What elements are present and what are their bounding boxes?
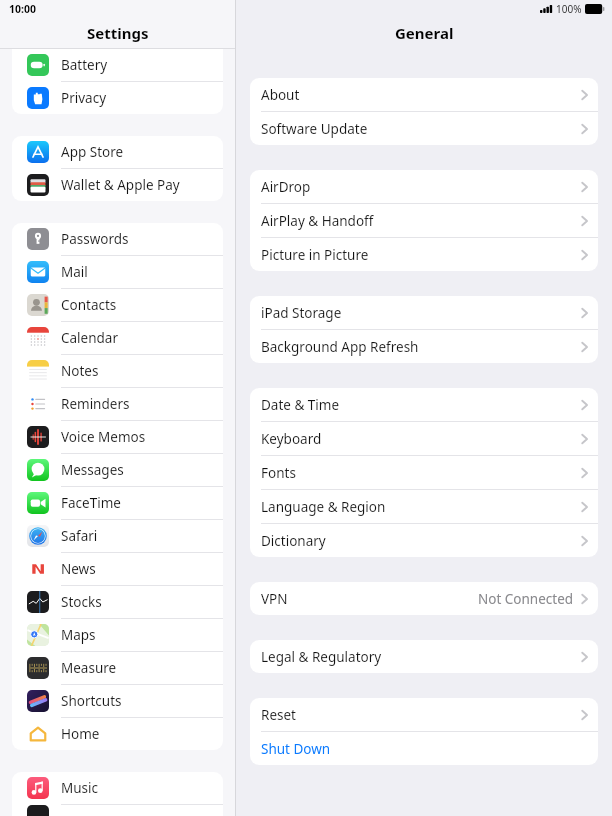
staticText: Date & Time: [261, 396, 340, 414]
button[interactable]: Dictionary: [250, 524, 598, 557]
button[interactable]: About: [250, 78, 598, 111]
button[interactable]: Voice Memos: [12, 421, 223, 453]
button[interactable]: Background App Refresh: [250, 330, 598, 363]
button[interactable]: Stocks: [12, 586, 223, 618]
staticText: Maps: [61, 626, 96, 644]
button[interactable]: Music: [12, 772, 223, 804]
button[interactable]: Messages: [12, 454, 223, 486]
staticText: Contacts: [61, 296, 117, 314]
button[interactable]: Keyboard: [250, 422, 598, 455]
staticText: iPad Storage: [261, 304, 342, 322]
button[interactable]: AirDrop: [250, 170, 598, 203]
button[interactable]: VPN: [250, 582, 598, 615]
staticText: Voice Memos: [61, 428, 146, 446]
staticText: Shortcuts: [61, 692, 122, 710]
staticText: About: [261, 86, 300, 104]
staticText: Notes: [61, 362, 99, 380]
button[interactable]: Calendar: [12, 322, 223, 354]
button[interactable]: News: [12, 553, 223, 585]
staticText: Home: [61, 725, 100, 743]
button[interactable]: Language & Region: [250, 490, 598, 523]
button[interactable]: App Store: [12, 136, 223, 168]
staticText: 10:00: [9, 2, 36, 16]
button[interactable]: [12, 805, 223, 816]
button[interactable]: iPad Storage: [250, 296, 598, 329]
staticText: General: [395, 23, 454, 43]
staticText: 100%: [556, 2, 582, 16]
staticText: Battery: [61, 56, 108, 74]
button[interactable]: Date & Time: [250, 388, 598, 421]
button[interactable]: FaceTime: [12, 487, 223, 519]
staticText: Stocks: [61, 593, 102, 611]
staticText: AirDrop: [261, 178, 311, 196]
staticText: Background App Refresh: [261, 338, 419, 356]
button[interactable]: Legal & Regulatory: [250, 640, 598, 673]
staticText: News: [61, 560, 96, 578]
staticText: App Store: [61, 143, 124, 161]
staticText: Reminders: [61, 395, 130, 413]
staticText: Reset: [261, 706, 296, 724]
staticText: Privacy: [61, 89, 107, 107]
other: Cellular signal: [540, 5, 553, 13]
staticText: Safari: [61, 527, 98, 545]
button[interactable]: Shortcuts: [12, 685, 223, 717]
button[interactable]: Picture in Picture: [250, 238, 598, 271]
button[interactable]: Privacy: [12, 82, 223, 114]
button[interactable]: AirPlay & Handoff: [250, 204, 598, 237]
staticText: Dictionary: [261, 532, 326, 550]
staticText: Not Connected: [478, 590, 574, 608]
button[interactable]: Mail: [12, 256, 223, 288]
staticText: Measure: [61, 659, 117, 677]
button[interactable]: Battery: [12, 49, 223, 81]
button[interactable]: Reminders: [12, 388, 223, 420]
other: Battery full: [585, 4, 605, 14]
staticText: Shut Down: [261, 740, 331, 758]
staticText: Picture in Picture: [261, 246, 369, 264]
staticText: FaceTime: [61, 494, 121, 512]
staticText: Mail: [61, 263, 88, 281]
staticText: Music: [61, 779, 99, 797]
staticText: Language & Region: [261, 498, 386, 516]
button[interactable]: Measure: [12, 652, 223, 684]
button[interactable]: Wallet & Apple Pay: [12, 169, 223, 201]
staticText: Settings: [87, 23, 149, 43]
staticText: Fonts: [261, 464, 296, 482]
staticText: Messages: [61, 461, 124, 479]
button[interactable]: Fonts: [250, 456, 598, 489]
staticText: Wallet & Apple Pay: [61, 176, 180, 194]
staticText: Legal & Regulatory: [261, 648, 382, 666]
button[interactable]: Reset: [250, 698, 598, 731]
staticText: Keyboard: [261, 430, 322, 448]
button[interactable]: Home: [12, 718, 223, 750]
button[interactable]: Notes: [12, 355, 223, 387]
button[interactable]: Passwords: [12, 223, 223, 255]
staticText: Software Update: [261, 120, 368, 138]
button[interactable]: Software Update: [250, 112, 598, 145]
button[interactable]: Maps: [12, 619, 223, 651]
button[interactable]: Safari: [12, 520, 223, 552]
staticText: Passwords: [61, 230, 129, 248]
button[interactable]: Contacts: [12, 289, 223, 321]
button[interactable]: Shut Down: [250, 732, 598, 765]
staticText: Calendar: [61, 329, 118, 347]
staticText: VPN: [261, 590, 288, 608]
staticText: AirPlay & Handoff: [261, 212, 374, 230]
